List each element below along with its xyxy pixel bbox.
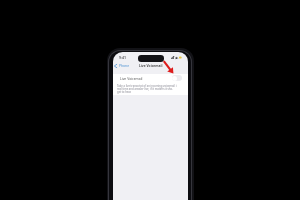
staticText: get to hear. — [117, 90, 132, 94]
staticText: Take a live transcript of an incoming vo… — [117, 84, 177, 88]
staticText: Live Voicemail — [139, 63, 163, 67]
staticText: 9:41 — [119, 55, 126, 60]
button[interactable]: Phone — [113, 62, 131, 69]
button[interactable]: Live Voicemail switch, off — [172, 75, 182, 81]
staticText: Live Voicemail — [120, 76, 143, 81]
button[interactable]: Live Voicemail — [113, 74, 188, 82]
staticText: real time and answer live, if it matters… — [117, 87, 173, 91]
staticText: Phone — [119, 63, 130, 68]
